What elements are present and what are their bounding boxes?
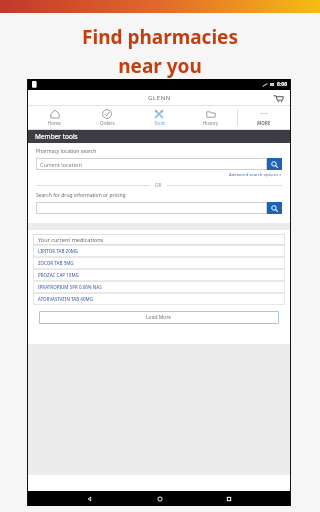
other: Search <box>267 158 282 170</box>
button[interactable]: Home <box>152 491 167 506</box>
staticText: OR <box>155 182 162 188</box>
button[interactable]: ZOCOR TAB 5MG <box>33 257 285 269</box>
staticText: Orders <box>100 120 115 126</box>
staticText: near you <box>118 53 202 79</box>
button[interactable]: Back <box>82 491 97 506</box>
staticText: History <box>203 120 219 126</box>
button[interactable]: IPRATROPIUM SPR 0.06% NAS <box>33 281 285 293</box>
button[interactable]: LIPITOR TAB 20MG <box>33 245 285 257</box>
button[interactable]: Tools <box>133 106 185 129</box>
button[interactable]: Home <box>28 106 81 129</box>
staticText: IPRATROPIUM SPR 0.06% NAS <box>38 284 102 290</box>
staticText: ZOCOR TAB 5MG <box>38 260 74 266</box>
staticText: Your current medications <box>38 236 104 243</box>
button[interactable]: Load More <box>39 311 279 324</box>
button[interactable]: PROZAC CAP 10MG <box>33 269 285 281</box>
button[interactable]: Shopping cart <box>273 93 284 104</box>
staticText: Pharmacy location search <box>36 148 97 155</box>
staticText: Load More <box>146 314 172 321</box>
button[interactable]: ATORVASTATIN TAB 40MG <box>33 293 285 305</box>
button[interactable]: Orders <box>81 106 133 129</box>
button[interactable]: Advanced search options » <box>229 172 282 178</box>
staticText: GLENN <box>148 94 171 102</box>
button[interactable]: MORE <box>238 106 290 129</box>
staticText: Tools <box>154 120 165 126</box>
staticText: Find pharmacies <box>82 24 238 50</box>
button[interactable]: Search <box>36 202 282 214</box>
staticText: PROZAC CAP 10MG <box>38 272 79 278</box>
button[interactable]: Recent apps <box>221 491 236 506</box>
staticText: Home <box>48 120 61 126</box>
staticText: Current location <box>40 161 82 168</box>
staticText: ATORVASTATIN TAB 40MG <box>38 296 93 302</box>
staticText: Search for drug information or pricing <box>36 192 126 199</box>
staticText: MORE <box>257 120 271 126</box>
button[interactable]: Current location <box>36 158 282 170</box>
staticText: LIPITOR TAB 20MG <box>38 248 79 254</box>
staticText: Member tools <box>35 132 78 141</box>
button[interactable]: History <box>185 106 237 129</box>
other: Search <box>267 202 282 214</box>
staticText: 6:06 <box>277 81 287 88</box>
